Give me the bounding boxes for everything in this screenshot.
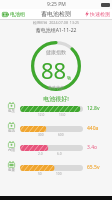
- staticText: 88: [41, 55, 67, 85]
- staticText: 电量: [8, 168, 15, 172]
- staticText: 快速检测: [90, 11, 110, 17]
- staticText: 蓄电池检测: [41, 10, 71, 18]
- staticText: 2.0: [38, 152, 43, 156]
- button[interactable]: Fast test: [85, 11, 110, 17]
- staticText: 电池很好!: [0, 95, 112, 103]
- staticText: 电池组: [10, 11, 25, 17]
- staticText: 电压: [8, 109, 15, 113]
- button[interactable]: 电量: [0, 159, 112, 177]
- staticText: 13.0: [59, 113, 66, 117]
- staticText: 440a: [87, 125, 99, 132]
- button[interactable]: 内阻: [0, 139, 112, 157]
- staticText: 65.5v: [87, 164, 100, 171]
- staticText: 50: [38, 172, 42, 176]
- staticText: 300: [38, 133, 44, 137]
- staticText: 健康指数: [46, 49, 66, 55]
- staticText: 6.0: [57, 152, 62, 156]
- button[interactable]: 电压: [0, 100, 112, 118]
- staticText: 蓄电池组A1-11-22: [0, 27, 112, 34]
- staticText: 12.0: [38, 113, 45, 117]
- staticText: 电流: [8, 129, 15, 133]
- button[interactable]: 电池组: [2, 11, 25, 17]
- staticText: 12.8v: [87, 105, 100, 112]
- staticText: 检测时间 2024-07-08 13:25: [0, 20, 112, 25]
- other: Fast test: [85, 11, 89, 17]
- staticText: 100: [56, 172, 62, 176]
- staticText: 600: [58, 133, 64, 137]
- staticText: 3.4o: [87, 144, 98, 151]
- button[interactable]: 电流: [0, 120, 112, 138]
- staticText: %: [67, 75, 72, 82]
- staticText: 9:25 PM: [47, 1, 66, 8]
- staticText: 内阻: [8, 148, 15, 152]
- staticText: 基准状态: [48, 85, 64, 90]
